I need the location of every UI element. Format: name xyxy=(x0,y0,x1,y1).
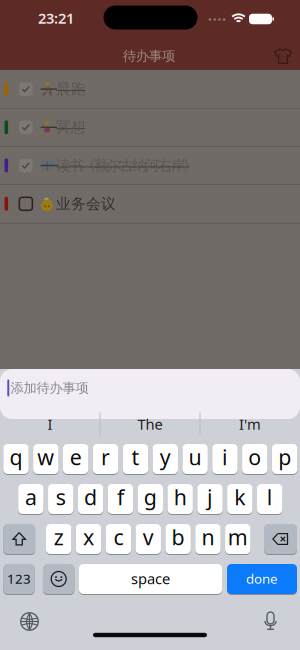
staticText: The xyxy=(137,414,162,434)
button[interactable]: b xyxy=(165,523,191,554)
button[interactable]: p xyxy=(272,443,297,474)
button[interactable]: d xyxy=(78,483,103,514)
button[interactable]: w xyxy=(33,443,59,474)
button[interactable] xyxy=(260,609,280,633)
button[interactable] xyxy=(264,523,297,554)
staticText: n xyxy=(201,523,214,551)
button[interactable]: s xyxy=(48,483,73,514)
staticText: e xyxy=(70,443,82,471)
button[interactable]: x xyxy=(76,523,101,554)
button[interactable]: u xyxy=(182,443,208,474)
button[interactable]: n xyxy=(195,523,221,554)
button[interactable]: I xyxy=(2,409,98,439)
button[interactable]: v xyxy=(136,523,161,554)
staticText: space xyxy=(131,569,170,588)
button[interactable] xyxy=(43,563,74,594)
staticText: s xyxy=(56,483,66,511)
staticText: h xyxy=(174,483,187,511)
button[interactable]: m xyxy=(225,523,250,554)
staticText: 待办事项 xyxy=(123,48,175,64)
button[interactable]: done xyxy=(227,563,297,594)
button[interactable]: 添加待办事项 xyxy=(0,369,300,407)
staticText: r xyxy=(101,443,110,471)
staticText: I'm xyxy=(239,414,261,434)
staticText: l xyxy=(267,483,273,511)
button[interactable]: 读书《额尔古纳河右岸》 xyxy=(0,146,300,185)
staticText: 读书《额尔古纳河右岸》 xyxy=(56,156,198,174)
button[interactable]: c xyxy=(106,523,131,554)
button[interactable]: g xyxy=(138,483,163,514)
button[interactable]: r xyxy=(93,443,118,474)
button[interactable]: l xyxy=(257,483,282,514)
staticText: 添加待办事项 xyxy=(10,380,88,396)
button[interactable]: a xyxy=(18,483,44,514)
staticText: a xyxy=(25,483,37,511)
button[interactable]: 业务会议 xyxy=(0,185,300,223)
button[interactable]: h xyxy=(167,483,193,514)
staticText: t xyxy=(131,443,139,471)
button[interactable]: q xyxy=(3,443,29,474)
button[interactable]: 123 xyxy=(3,563,35,594)
staticText: g xyxy=(144,483,157,511)
staticText: 晨跑 xyxy=(56,80,86,98)
staticText: w xyxy=(37,443,54,471)
button[interactable]: k xyxy=(227,483,253,514)
button[interactable]: I'm xyxy=(202,409,298,439)
staticText: 123 xyxy=(7,570,31,587)
staticText: i xyxy=(222,443,228,471)
button[interactable]: f xyxy=(108,483,133,514)
staticText: o xyxy=(248,443,261,471)
staticText: y xyxy=(160,443,171,471)
button[interactable]: e xyxy=(63,443,88,474)
staticText: x xyxy=(83,523,94,551)
staticText: d xyxy=(84,483,97,511)
button[interactable]: i xyxy=(212,443,238,474)
button[interactable]: y xyxy=(153,443,178,474)
button[interactable] xyxy=(16,608,42,634)
staticText: I xyxy=(47,414,52,434)
staticText: 冥想 xyxy=(56,118,86,136)
staticText: 业务会议 xyxy=(56,195,116,213)
staticText: u xyxy=(189,443,202,471)
button[interactable]: t xyxy=(123,443,148,474)
staticText: j xyxy=(207,483,213,511)
button[interactable]: j xyxy=(197,483,223,514)
button[interactable]: z xyxy=(46,523,71,554)
staticText: b xyxy=(172,523,185,551)
staticText: p xyxy=(278,443,291,471)
staticText: m xyxy=(228,523,248,551)
button[interactable] xyxy=(3,523,35,554)
staticText: k xyxy=(234,483,245,511)
button[interactable]: 冥想 xyxy=(0,108,300,146)
staticText: q xyxy=(9,443,22,471)
staticText: f xyxy=(117,483,124,511)
staticText: v xyxy=(143,523,154,551)
staticText: z xyxy=(54,523,64,551)
button[interactable]: o xyxy=(242,443,267,474)
staticText: done xyxy=(246,570,278,587)
staticText: 23:21 xyxy=(38,8,74,28)
button[interactable] xyxy=(271,44,295,68)
staticText: c xyxy=(113,523,123,551)
button[interactable]: space xyxy=(79,563,222,594)
button[interactable]: 晨跑 xyxy=(0,70,300,108)
button[interactable]: The xyxy=(102,409,198,439)
